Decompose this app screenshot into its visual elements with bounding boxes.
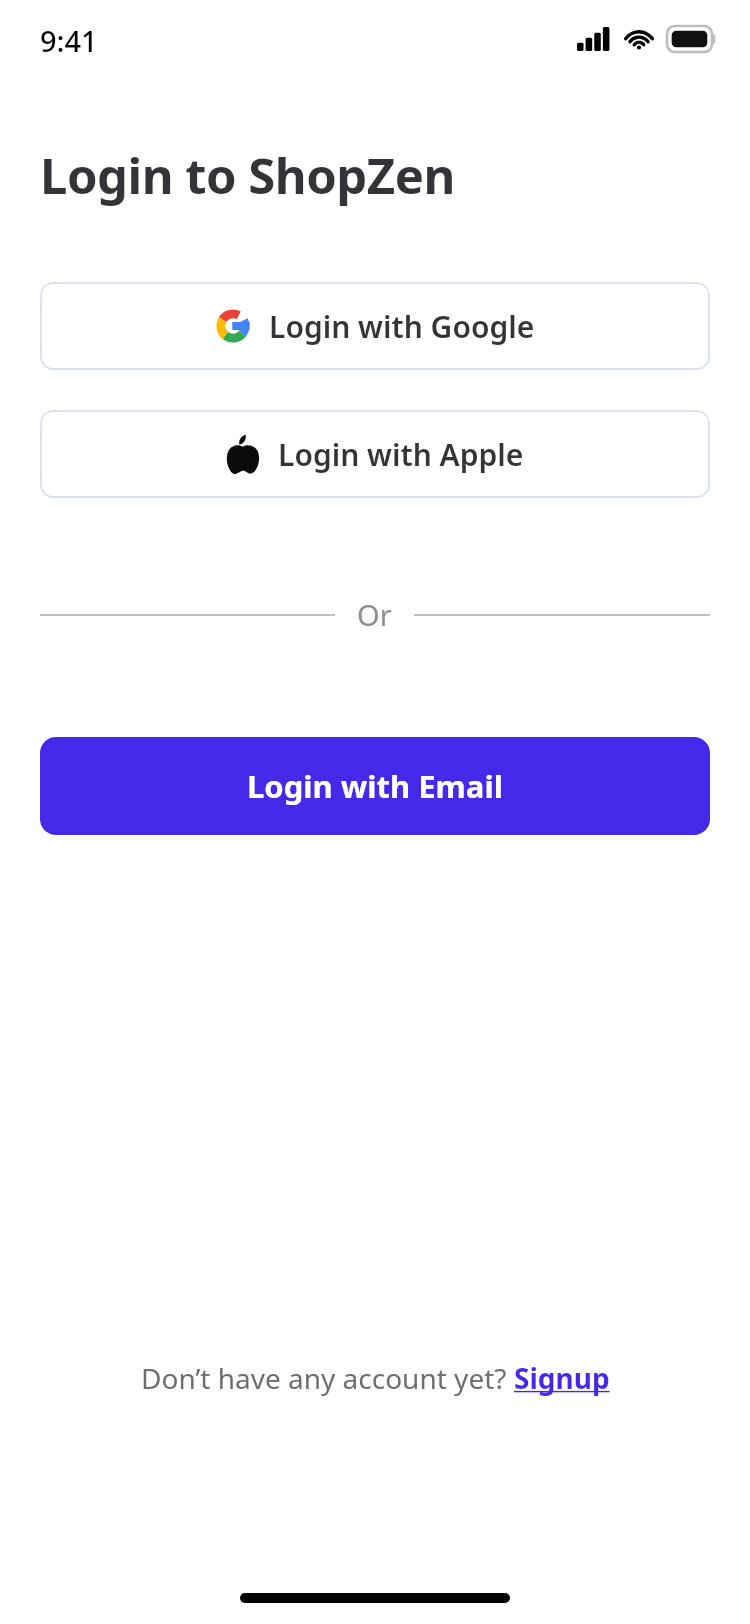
staticText: Signup [514, 1359, 610, 1397]
staticText: Login with Google [269, 306, 535, 347]
staticText: Login to ShopZen [40, 142, 455, 209]
button[interactable]: Login with Apple [40, 410, 710, 498]
button[interactable]: Login with Google [40, 282, 710, 370]
staticText: Login with Apple [278, 434, 524, 475]
staticText: Don’t have any account yet? [141, 1359, 514, 1397]
staticText: Or [357, 595, 392, 634]
staticText: 9:41 [40, 21, 98, 60]
staticText: Login with Email [247, 765, 503, 807]
button[interactable]: Login with Email [40, 737, 710, 835]
button[interactable]: Signup [514, 1359, 610, 1397]
